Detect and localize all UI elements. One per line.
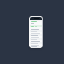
button[interactable] — [31, 32, 41, 34]
button[interactable] — [31, 34, 41, 36]
button[interactable] — [31, 46, 41, 47]
button[interactable] — [31, 44, 41, 46]
button[interactable] — [31, 38, 41, 40]
button[interactable] — [31, 36, 41, 38]
button[interactable] — [31, 25, 41, 27]
button[interactable] — [31, 28, 41, 30]
button[interactable] — [31, 21, 41, 24]
button[interactable] — [31, 30, 41, 32]
button[interactable] — [31, 42, 41, 44]
button[interactable] — [31, 40, 41, 42]
